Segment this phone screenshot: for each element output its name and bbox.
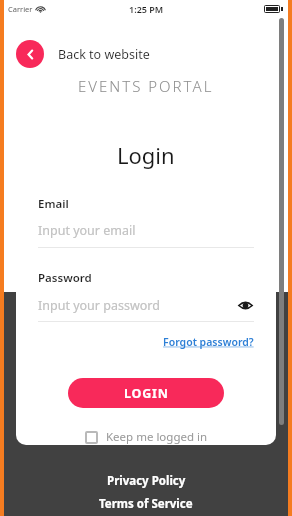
staticText: Input your password [38, 297, 236, 314]
staticText: 1:25 PM [129, 3, 164, 15]
button[interactable]: Input your password [38, 296, 254, 322]
staticText: Email [38, 196, 69, 212]
staticText: LOGIN [124, 385, 169, 402]
staticText: Terms of Service [99, 496, 193, 512]
staticText: EVENTS PORTAL [78, 76, 214, 96]
button[interactable]: Privacy Policy [97, 468, 196, 494]
button[interactable]: LOGIN [68, 378, 224, 408]
button[interactable]: Show password [236, 296, 254, 314]
button[interactable]: Keep me logged in [85, 429, 208, 445]
staticText: Password [38, 270, 92, 286]
button[interactable]: Back [16, 40, 156, 68]
button[interactable]: Terms of Service [89, 494, 203, 514]
staticText: Carrier [8, 4, 33, 14]
staticText: Keep me logged in [106, 429, 208, 445]
other: Back [16, 40, 44, 68]
button[interactable]: Input your email [38, 222, 254, 248]
staticText: Login [117, 140, 175, 170]
staticText: Privacy Policy [107, 473, 186, 489]
staticText: Back to website [58, 46, 150, 63]
staticText: Input your email [38, 222, 136, 239]
staticText: Forgot password? [163, 335, 254, 349]
button[interactable]: Forgot password? [163, 335, 254, 349]
